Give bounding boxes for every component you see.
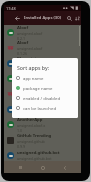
button[interactable]: Aloof xyxy=(4,25,81,40)
staticText: Feeder xyxy=(17,102,32,108)
button[interactable]: can be launched xyxy=(12,103,78,113)
button[interactable]: Home xyxy=(37,162,48,173)
staticText: unsigned.github.bot xyxy=(17,156,52,161)
button[interactable]: Drive xyxy=(4,86,81,101)
staticText: AnotherApp xyxy=(17,117,43,123)
staticText: Sort apps by: xyxy=(17,64,50,71)
staticText: can be launched xyxy=(23,105,57,111)
button[interactable]: GitHub Trending xyxy=(4,133,81,148)
staticText: unsigned.aloof.x xyxy=(17,123,46,128)
button[interactable]: Aloof xyxy=(4,40,81,55)
staticText: unsigned.github.bot xyxy=(17,150,60,156)
staticText: unsigned.blueprint xyxy=(17,62,50,67)
staticText: unsigned.aloof xyxy=(17,31,43,36)
button[interactable]: Chrome xyxy=(4,71,81,86)
button[interactable]: AnotherApp xyxy=(4,117,81,132)
staticText: Installed Apps (30) xyxy=(24,15,61,21)
staticText: 17:48 xyxy=(6,6,16,11)
staticText: 0.2.1 xyxy=(17,36,26,40)
staticText: com.android.chrome xyxy=(17,77,53,82)
staticText: unsigned.aloof xyxy=(17,46,43,51)
button[interactable]: unsigned.github.bot xyxy=(4,148,81,163)
button[interactable]: Recent apps xyxy=(15,162,26,173)
staticText: GitHub Trending xyxy=(17,133,52,139)
staticText: 2.2 xyxy=(17,97,23,101)
staticText: Aloof xyxy=(17,25,29,31)
staticText: package name xyxy=(23,85,53,91)
staticText: app name xyxy=(23,75,44,81)
staticText: 0.9.9 xyxy=(17,144,26,148)
staticText: enabled / disabled xyxy=(23,95,61,101)
staticText: unsigned.github xyxy=(17,139,45,144)
button[interactable]: Feeder xyxy=(4,102,81,117)
button[interactable]: Blueprint xyxy=(4,56,81,71)
staticText: 1.0 xyxy=(17,67,23,71)
button[interactable]: Back xyxy=(59,162,70,173)
staticText: com.google.drive xyxy=(17,92,47,97)
staticText: Aloof xyxy=(17,40,29,46)
button[interactable]: Search xyxy=(64,13,74,23)
staticText: com.nononsense.feeder xyxy=(17,108,58,113)
staticText: Drive xyxy=(17,86,29,92)
staticText: Chrome xyxy=(17,71,34,77)
staticText: 0.1.26 xyxy=(17,51,28,55)
button[interactable]: Back xyxy=(12,13,23,24)
button[interactable]: enabled / disabled xyxy=(12,93,78,103)
staticText: 1.0 xyxy=(17,128,23,132)
button[interactable]: package name xyxy=(12,83,78,93)
button[interactable]: app name xyxy=(12,73,78,83)
staticText: Blueprint xyxy=(17,56,37,62)
button[interactable]: Sort order xyxy=(72,13,82,23)
